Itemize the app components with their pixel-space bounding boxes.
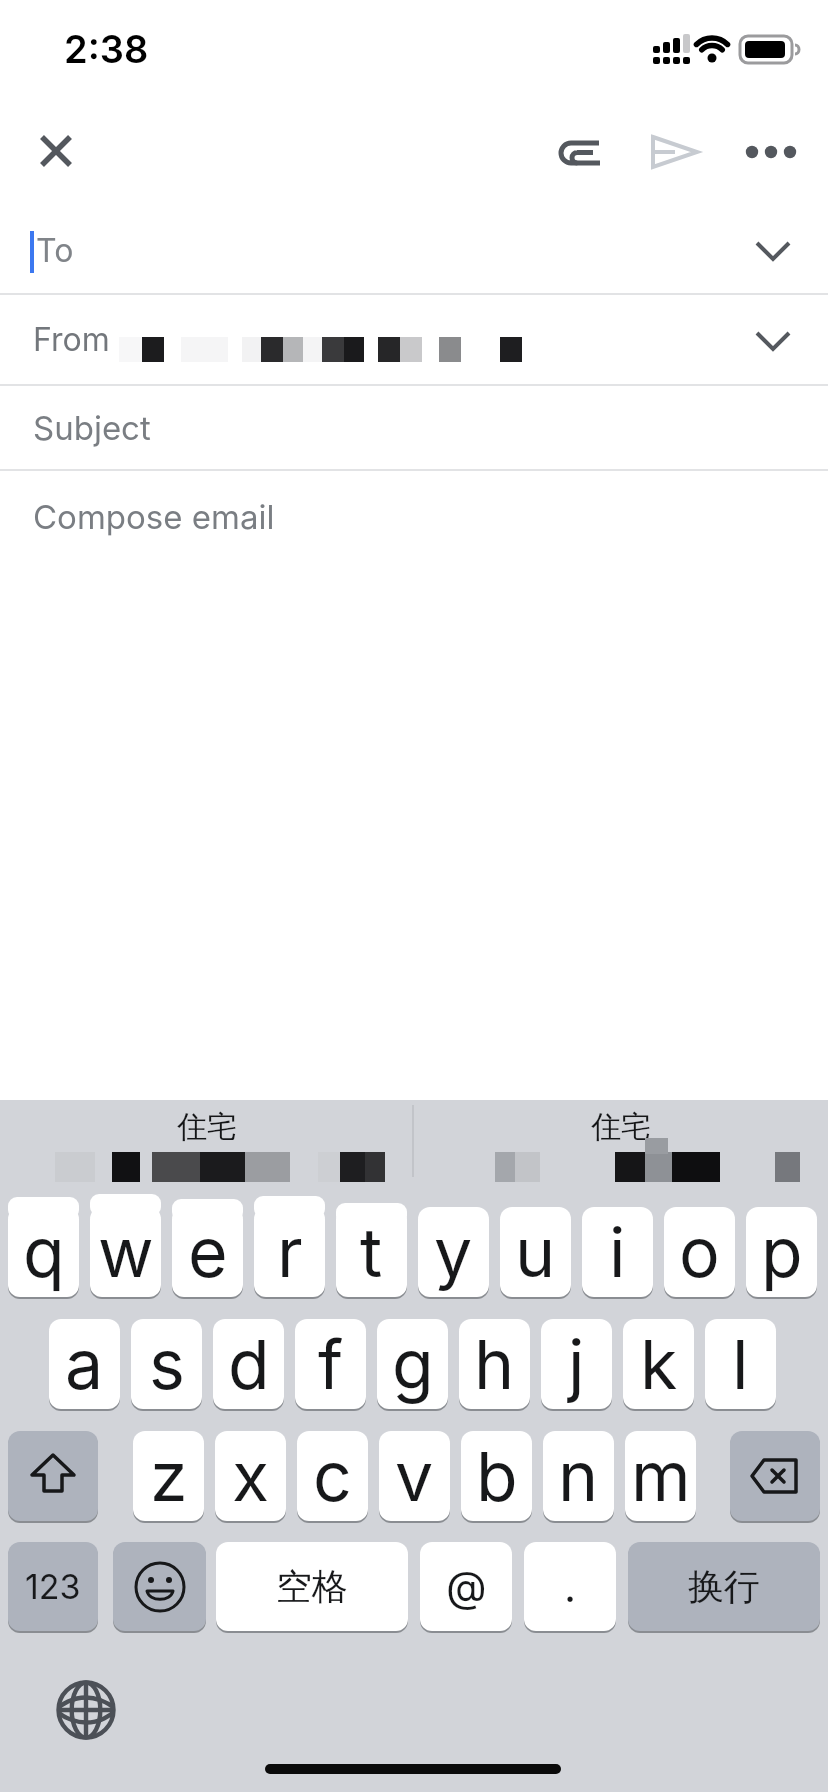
button[interactable]: r	[254, 1207, 325, 1297]
staticText: j	[568, 1323, 585, 1405]
button[interactable]: k	[623, 1319, 694, 1409]
button[interactable]: 住宅	[413, 1100, 828, 1203]
staticText: p	[761, 1211, 803, 1293]
staticText: l	[732, 1323, 749, 1405]
button[interactable]	[30, 125, 82, 177]
button[interactable]	[8, 1431, 98, 1521]
staticText: s	[149, 1323, 185, 1405]
staticText: g	[392, 1323, 434, 1405]
button[interactable]: d	[213, 1319, 284, 1409]
button[interactable]: 空格	[216, 1542, 408, 1631]
button[interactable]	[52, 1676, 120, 1744]
staticText: q	[23, 1211, 65, 1293]
button[interactable]: z	[133, 1431, 204, 1521]
button[interactable]: g	[377, 1319, 448, 1409]
staticText: z	[150, 1435, 188, 1517]
staticText: i	[609, 1211, 626, 1293]
staticText: v	[395, 1435, 434, 1517]
button[interactable]: p	[746, 1207, 817, 1297]
staticText: r	[277, 1211, 303, 1293]
staticText: Subject	[33, 408, 151, 448]
button[interactable]	[550, 126, 612, 178]
button[interactable]: i	[582, 1207, 653, 1297]
staticText: @	[446, 1561, 487, 1612]
button[interactable]: To	[0, 207, 828, 293]
staticText: 空格	[276, 1564, 348, 1609]
button[interactable]: .	[524, 1542, 616, 1631]
button[interactable]: c	[297, 1431, 368, 1521]
staticText: f	[318, 1323, 344, 1405]
staticText: t	[360, 1211, 383, 1293]
button[interactable]: a	[49, 1319, 120, 1409]
staticText: 住宅	[177, 1108, 237, 1146]
staticText: Compose email	[33, 497, 275, 537]
button[interactable]: o	[664, 1207, 735, 1297]
button[interactable]: j	[541, 1319, 612, 1409]
button[interactable]: s	[131, 1319, 202, 1409]
staticText: From	[33, 320, 110, 359]
button[interactable]: e	[172, 1207, 243, 1297]
button[interactable]	[730, 1431, 820, 1521]
button[interactable]: u	[500, 1207, 571, 1297]
staticText: n	[558, 1435, 599, 1517]
staticText: 换行	[688, 1564, 760, 1609]
staticText: k	[640, 1323, 678, 1405]
staticText: To	[36, 231, 74, 270]
staticText: 住宅	[591, 1108, 651, 1146]
button[interactable]: @	[420, 1542, 512, 1631]
button[interactable]: l	[705, 1319, 776, 1409]
button[interactable]: From	[0, 295, 828, 384]
staticText: .	[564, 1561, 577, 1612]
button[interactable]	[645, 126, 705, 178]
staticText: w	[98, 1211, 154, 1293]
staticText: a	[65, 1323, 104, 1405]
button[interactable]: Subject	[0, 386, 828, 469]
button[interactable]: h	[459, 1319, 530, 1409]
button[interactable]: w	[90, 1207, 161, 1297]
button[interactable]: y	[418, 1207, 489, 1297]
staticText: 123	[25, 1566, 81, 1607]
button[interactable]: q	[8, 1207, 79, 1297]
button[interactable]: x	[215, 1431, 286, 1521]
button[interactable]: b	[461, 1431, 532, 1521]
button[interactable]: n	[543, 1431, 614, 1521]
button[interactable]: m	[625, 1431, 696, 1521]
staticText: m	[631, 1435, 691, 1517]
button[interactable]: Compose email	[0, 471, 828, 563]
staticText: h	[474, 1323, 515, 1405]
staticText: o	[679, 1211, 720, 1293]
button[interactable]: 123	[8, 1542, 98, 1631]
staticText: e	[188, 1211, 228, 1293]
staticText: u	[515, 1211, 556, 1293]
button[interactable]: 住宅	[0, 1100, 413, 1203]
staticText: y	[434, 1211, 473, 1293]
staticText: c	[313, 1435, 352, 1517]
button[interactable]: v	[379, 1431, 450, 1521]
staticText: d	[228, 1323, 270, 1405]
button[interactable]: t	[336, 1207, 407, 1297]
staticText: 2:38	[64, 26, 149, 72]
button[interactable]: 换行	[628, 1542, 820, 1631]
button[interactable]	[740, 126, 800, 178]
staticText: x	[232, 1435, 270, 1517]
staticText: b	[476, 1435, 518, 1517]
button[interactable]	[113, 1542, 206, 1631]
button[interactable]: f	[295, 1319, 366, 1409]
